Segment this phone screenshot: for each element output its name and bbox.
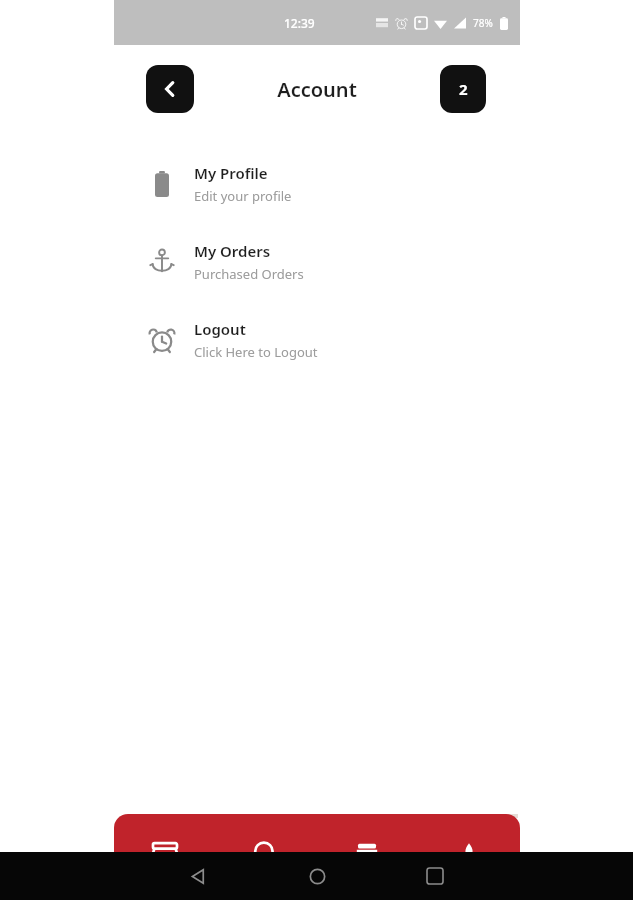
other: Back [190, 868, 207, 885]
button[interactable]: Back [146, 65, 194, 113]
button[interactable]: My Orders [114, 237, 520, 287]
button[interactable]: Logout [114, 315, 520, 365]
other: Recents [427, 868, 443, 884]
button[interactable]: My Profile [114, 159, 520, 209]
staticText: Purchased Orders [194, 265, 304, 283]
button[interactable]: 2 [440, 65, 486, 113]
staticText: 78% [473, 16, 493, 30]
button[interactable]: Search [215, 820, 316, 900]
other: Home [309, 868, 326, 885]
staticText: Edit your profile [194, 187, 292, 205]
button[interactable]: Shop [114, 820, 215, 900]
button[interactable]: Account [418, 820, 520, 900]
staticText: Click Here to Logout [194, 343, 318, 361]
staticText: My Orders [194, 241, 271, 261]
staticText: 12:39 [284, 15, 315, 31]
staticText: Logout [194, 319, 246, 339]
staticText: 2 [459, 79, 468, 99]
staticText: My Profile [194, 163, 268, 183]
button[interactable]: Cart [316, 820, 418, 900]
staticText: Account [277, 76, 357, 103]
